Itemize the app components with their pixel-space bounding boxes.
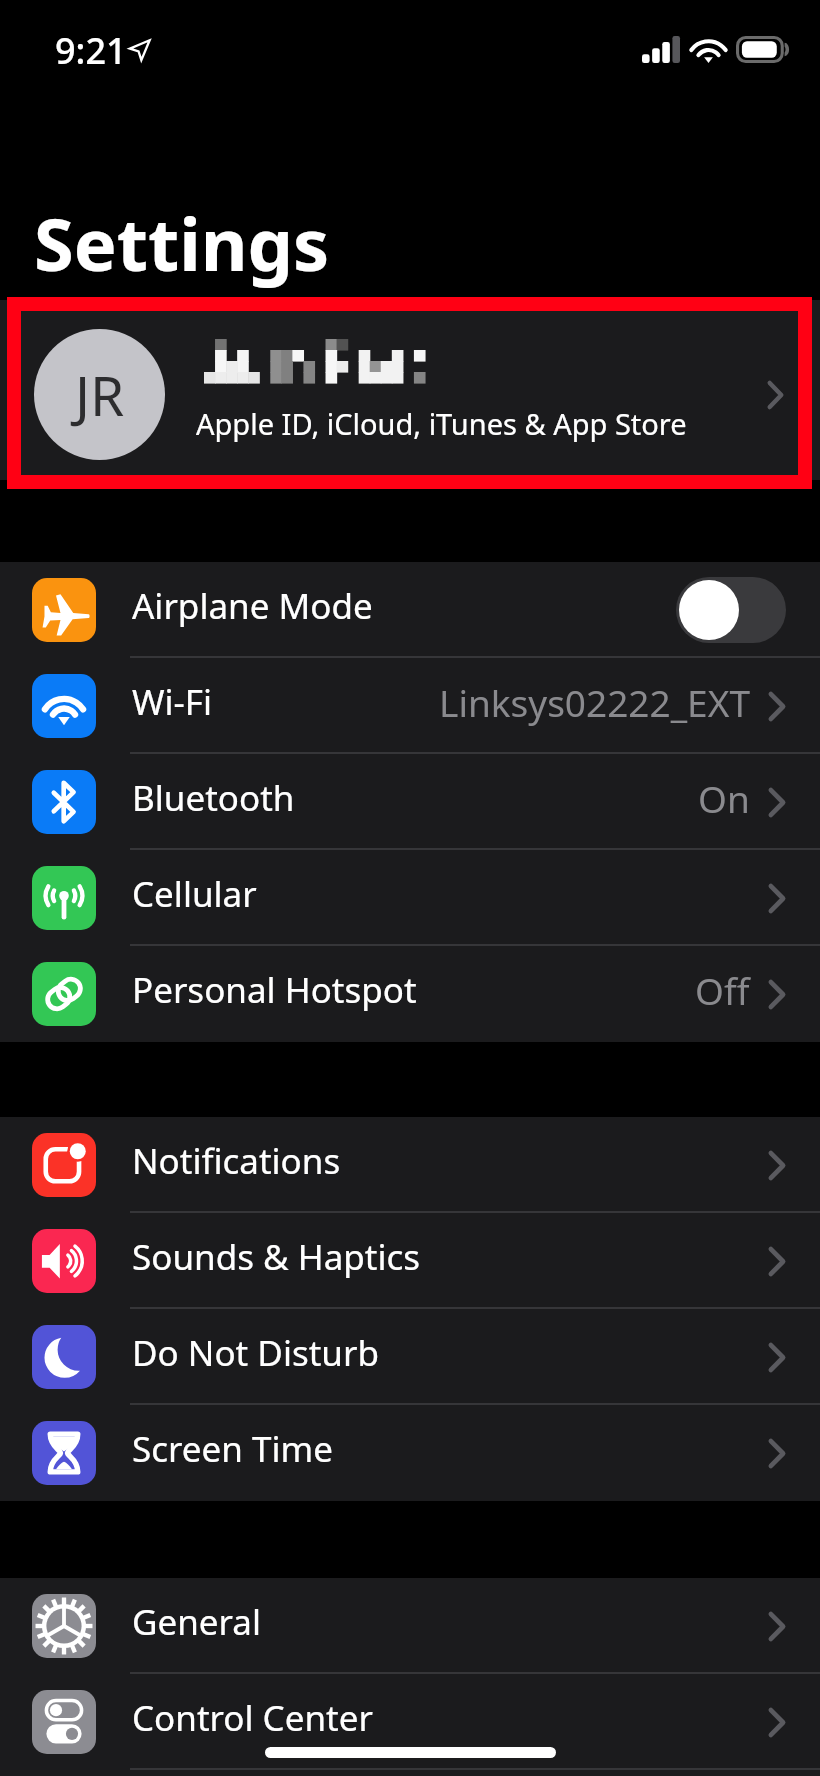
button[interactable]: General <box>0 1578 820 1674</box>
staticText: Do Not Disturb <box>132 1329 379 1377</box>
button[interactable]: Personal Hotspot <box>0 946 820 1042</box>
staticText: Control Center <box>132 1694 373 1742</box>
staticText: Sounds & Haptics <box>132 1233 421 1281</box>
staticText: 9:21 <box>55 26 127 75</box>
button[interactable]: Sounds & Haptics <box>0 1213 820 1309</box>
staticText: Cellular <box>132 870 257 918</box>
staticText: Airplane Mode <box>132 582 373 630</box>
staticText: On <box>698 773 750 823</box>
button[interactable]: Bluetooth <box>0 754 820 850</box>
staticText: Personal Hotspot <box>132 966 417 1014</box>
button[interactable]: Do Not Disturb <box>0 1309 820 1405</box>
staticText: Notifications <box>132 1137 341 1185</box>
staticText: Off <box>695 965 750 1015</box>
button[interactable]: Screen Time <box>0 1405 820 1501</box>
button[interactable]: Notifications <box>0 1117 820 1213</box>
button[interactable]: Airplane Mode <box>0 562 820 658</box>
staticText: Settings <box>34 194 330 292</box>
staticText: Linksys02222_EXT <box>439 677 750 727</box>
button[interactable]: JR <box>0 300 820 480</box>
staticText: Bluetooth <box>132 774 295 822</box>
staticText: Apple ID, iCloud, iTunes & App Store <box>196 404 687 443</box>
staticText: Wi-Fi <box>132 678 213 726</box>
staticText: Screen Time <box>132 1425 333 1473</box>
staticText: General <box>132 1598 262 1646</box>
button[interactable]: Wi-Fi <box>0 658 820 754</box>
staticText: JR <box>75 357 125 432</box>
button[interactable]: Airplane Mode toggle <box>676 577 786 643</box>
button[interactable]: Cellular <box>0 850 820 946</box>
button[interactable]: Control Center <box>0 1674 820 1770</box>
